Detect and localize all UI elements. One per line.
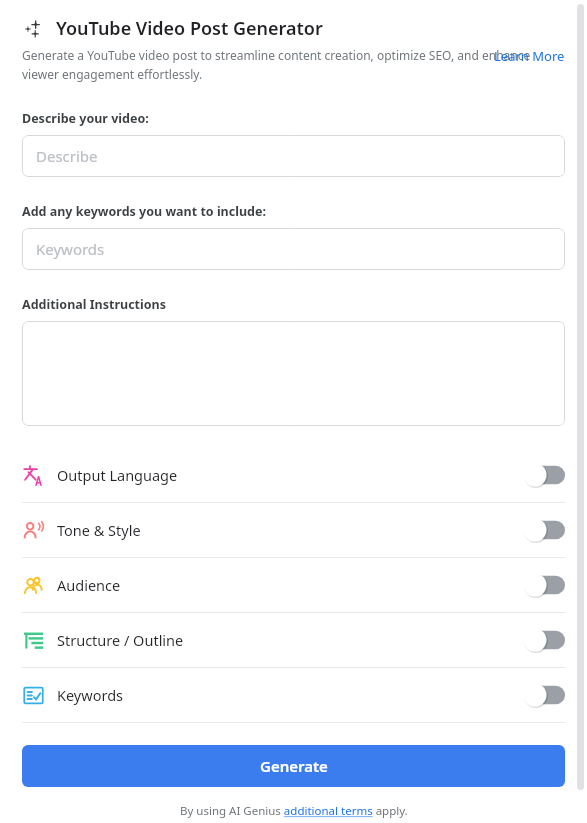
button[interactable] xyxy=(22,321,565,426)
staticText: Tone & Style xyxy=(57,520,141,540)
button[interactable]: Keywords xyxy=(22,668,565,722)
staticText: Describe xyxy=(36,146,98,166)
staticText: Keywords xyxy=(36,239,105,259)
button[interactable]: Toggle xyxy=(523,683,565,707)
staticText: Generate a YouTube video post to streaml… xyxy=(22,47,565,82)
staticText: Learn More xyxy=(494,47,565,65)
staticText: Generate xyxy=(260,756,328,776)
button[interactable]: Toggle xyxy=(523,518,565,542)
button[interactable]: Keywords xyxy=(22,228,565,270)
staticText: Output Language xyxy=(57,465,178,485)
button[interactable]: Structure / Outline xyxy=(22,613,565,667)
button[interactable]: Output Language xyxy=(22,448,565,502)
staticText: Structure / Outline xyxy=(57,630,184,650)
button[interactable]: Generate xyxy=(22,745,565,787)
staticText: Additional Instructions xyxy=(22,296,166,313)
button[interactable]: Audience xyxy=(22,558,565,612)
button[interactable]: Toggle xyxy=(523,628,565,652)
button[interactable]: Describe xyxy=(22,135,565,177)
button[interactable]: Learn More xyxy=(494,47,565,65)
staticText: Describe your video: xyxy=(22,110,149,127)
staticText: YouTube Video Post Generator xyxy=(56,16,323,41)
staticText: By using AI Genius additional terms appl… xyxy=(180,803,408,819)
button[interactable]: Toggle xyxy=(523,463,565,487)
staticText: Audience xyxy=(57,575,121,595)
staticText: Keywords xyxy=(57,685,123,705)
button[interactable]: Tone & Style xyxy=(22,503,565,557)
button[interactable]: Toggle xyxy=(523,573,565,597)
staticText: Add any keywords you want to include: xyxy=(22,203,266,220)
